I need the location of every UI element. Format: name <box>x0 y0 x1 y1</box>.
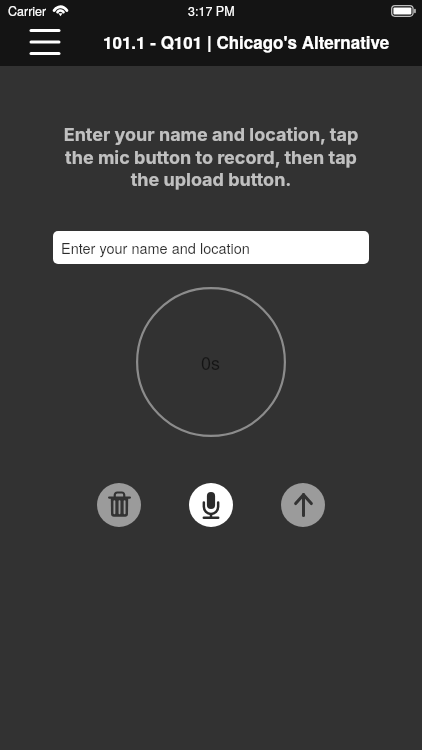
button[interactable]: Upload recording <box>281 483 325 527</box>
staticText: 3:17 PM <box>188 2 235 20</box>
staticText: Carrier <box>8 2 47 20</box>
button[interactable]: Enter your name and location <box>53 231 369 264</box>
staticText: 0s <box>201 349 221 375</box>
button[interactable]: Delete recording <box>97 483 141 527</box>
staticText: Enter your name and location, tap the mi… <box>56 124 366 190</box>
staticText: Enter your name and location <box>61 237 250 258</box>
button[interactable]: Record <box>189 483 233 527</box>
staticText: 101.1 - Q101 | Chicago's Alternative <box>103 30 390 54</box>
button[interactable]: Open menu <box>22 22 68 66</box>
